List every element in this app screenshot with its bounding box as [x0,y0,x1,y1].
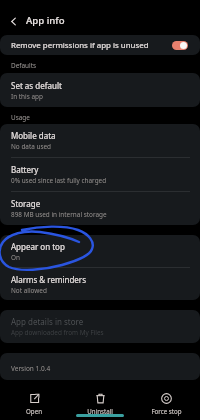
staticText: Set as default [11,80,62,91]
button[interactable]: Back [0,5,26,31]
staticText: Version 1.0.4 [11,364,51,373]
staticText: Mobile data [11,130,56,141]
button[interactable]: Appear on top [0,235,200,267]
button[interactable]: Alarms & reminders [0,268,200,300]
staticText: App details in store [11,316,84,327]
staticText: Storage [11,198,41,209]
button[interactable]: Battery [0,158,200,191]
button[interactable]: Force stop [134,384,198,415]
button[interactable]: App details in store [0,310,200,343]
staticText: In this app [11,92,43,101]
staticText: Battery [11,164,39,175]
staticText: Appear on top [11,241,65,252]
button[interactable]: Set as default [0,73,200,107]
button[interactable]: Open [2,384,66,415]
button[interactable]: Mobile data [0,124,200,157]
staticText: Not allowed [11,286,47,295]
staticText: App downloaded from My Files [11,328,104,337]
staticText: No data used [11,142,51,151]
staticText: Remove permissions if app is unused [11,40,172,51]
staticText: Uninstall [87,407,113,415]
staticText: Defaults [11,61,37,70]
button[interactable]: Storage [0,192,200,225]
staticText: App info [26,14,65,27]
staticText: Alarms & reminders [11,274,87,285]
button[interactable]: Uninstall [68,384,132,415]
staticText: On [11,253,20,262]
staticText: Open [26,407,42,415]
staticText: 0% used since last fully charged [11,176,107,185]
button[interactable]: Remove permissions if app is unused [0,35,200,55]
staticText: Force stop [151,407,182,415]
staticText: 898 MB used in internal storage [11,210,107,219]
staticText: Usage [11,113,30,122]
